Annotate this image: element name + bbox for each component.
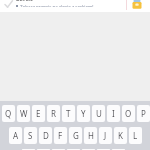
button[interactable]: Open recipe bbox=[132, 0, 142, 9]
button[interactable]: R bbox=[47, 105, 60, 122]
staticText: G bbox=[73, 130, 79, 141]
button[interactable]: I bbox=[107, 105, 120, 122]
staticText: O bbox=[125, 108, 132, 119]
staticText: Y bbox=[81, 108, 86, 119]
button[interactable]: F bbox=[54, 127, 67, 144]
staticText: U bbox=[96, 108, 102, 119]
button[interactable]: D bbox=[39, 127, 52, 144]
staticText: W bbox=[20, 108, 28, 119]
button[interactable]: A bbox=[9, 127, 22, 144]
staticText: K bbox=[118, 130, 123, 141]
staticText: E bbox=[36, 108, 41, 119]
staticText: D bbox=[43, 130, 49, 141]
staticText: Serek bbox=[16, 0, 33, 3]
button[interactable]: P bbox=[137, 105, 150, 122]
other: Done bbox=[3, 0, 14, 10]
button[interactable]: Q bbox=[2, 105, 15, 122]
button[interactable]: Y bbox=[77, 105, 90, 122]
button[interactable]: H bbox=[84, 127, 97, 144]
button[interactable]: Done bbox=[0, 0, 150, 12]
button[interactable]: S bbox=[24, 127, 37, 144]
staticText: S bbox=[28, 130, 33, 141]
button[interactable]: K bbox=[114, 127, 127, 144]
button[interactable]: L bbox=[129, 127, 142, 144]
button[interactable]: U bbox=[92, 105, 105, 122]
button[interactable]: J bbox=[99, 127, 112, 144]
staticText: L bbox=[133, 130, 138, 141]
button[interactable]: E bbox=[32, 105, 45, 122]
button[interactable]: O bbox=[122, 105, 135, 122]
staticText: P bbox=[141, 108, 146, 119]
button[interactable]: T bbox=[62, 105, 75, 122]
staticText: Zobacz przepis na danie z serkiem! bbox=[20, 4, 94, 7]
staticText: F bbox=[58, 130, 63, 141]
staticText: H bbox=[88, 130, 94, 141]
staticText: I bbox=[112, 108, 115, 119]
button[interactable]: G bbox=[69, 127, 82, 144]
staticText: R bbox=[51, 108, 56, 119]
staticText: A bbox=[13, 130, 19, 141]
button[interactable]: W bbox=[17, 105, 30, 122]
staticText: T bbox=[66, 108, 71, 119]
staticText: J bbox=[104, 130, 107, 141]
staticText: Q bbox=[5, 108, 12, 119]
